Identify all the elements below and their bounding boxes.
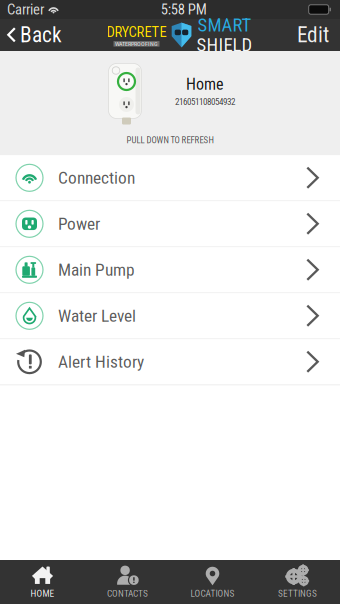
staticText: PULL DOWN TO REFRESH [126,135,213,145]
staticText: SMART [197,14,251,36]
staticText: HOME [30,588,54,599]
button[interactable]: Power [0,201,340,247]
staticText: Power [58,214,100,234]
button[interactable]: Main Pump [0,247,340,293]
staticText: Back [20,22,62,47]
staticText: Home [186,75,224,94]
staticText: SHIELD [196,34,252,56]
button[interactable]: Back [0,16,62,53]
staticText: SETTINGS [278,588,317,599]
staticText: DRYCRETE [106,23,166,41]
staticText: Edit [297,22,329,47]
staticText: CONTACTS [107,588,148,599]
button[interactable]: LOCATIONS [170,560,255,604]
button[interactable]: HOME [0,560,85,604]
button[interactable]: SETTINGS [255,560,340,604]
staticText: WATERPROOFING [115,40,158,47]
staticText: 216051108054932 [175,97,235,107]
button[interactable]: Water Level [0,293,340,339]
staticText: Alert History [58,352,144,372]
staticText: Connection [58,168,135,188]
button[interactable]: CONTACTS [85,560,170,604]
staticText: Main Pump [58,260,135,280]
staticText: 5:58 PM [161,1,207,18]
staticText: Water Level [58,306,136,326]
staticText: LOCATIONS [190,588,234,599]
button[interactable]: Alert History [0,339,340,385]
button[interactable]: Connection [0,155,340,201]
staticText: Carrier [7,1,44,18]
button[interactable]: Edit [297,16,340,53]
